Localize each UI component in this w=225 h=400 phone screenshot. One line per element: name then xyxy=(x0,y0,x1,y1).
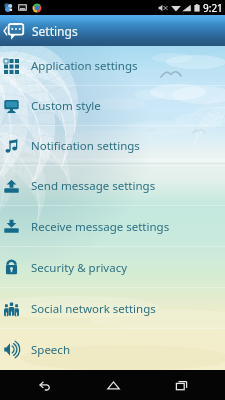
staticText: 9:21 xyxy=(203,1,223,15)
staticText: Security & privacy xyxy=(31,260,128,276)
button[interactable]: Application settings xyxy=(0,46,225,86)
button[interactable]: Social network settings xyxy=(0,288,225,329)
staticText: Social network settings xyxy=(31,301,156,317)
staticText: Speech xyxy=(31,342,70,358)
button[interactable]: Custom style xyxy=(0,86,225,126)
button[interactable]: Notification settings xyxy=(0,126,225,166)
staticText: Custom style xyxy=(31,98,101,114)
button[interactable]: Send message settings xyxy=(0,166,225,206)
staticText: Application settings xyxy=(31,58,138,74)
button[interactable]: Speech xyxy=(0,329,225,370)
staticText: Notification settings xyxy=(31,138,140,154)
button[interactable]: Back xyxy=(19,370,69,400)
button[interactable]: Security & privacy xyxy=(0,247,225,288)
button[interactable]: Navigate up xyxy=(2,15,26,46)
button[interactable]: Home xyxy=(88,370,138,400)
staticText: Receive message settings xyxy=(31,219,170,235)
staticText: Send message settings xyxy=(31,178,156,194)
button[interactable]: Recent apps xyxy=(156,370,206,400)
button[interactable]: Receive message settings xyxy=(0,206,225,247)
staticText: Settings xyxy=(32,23,78,39)
